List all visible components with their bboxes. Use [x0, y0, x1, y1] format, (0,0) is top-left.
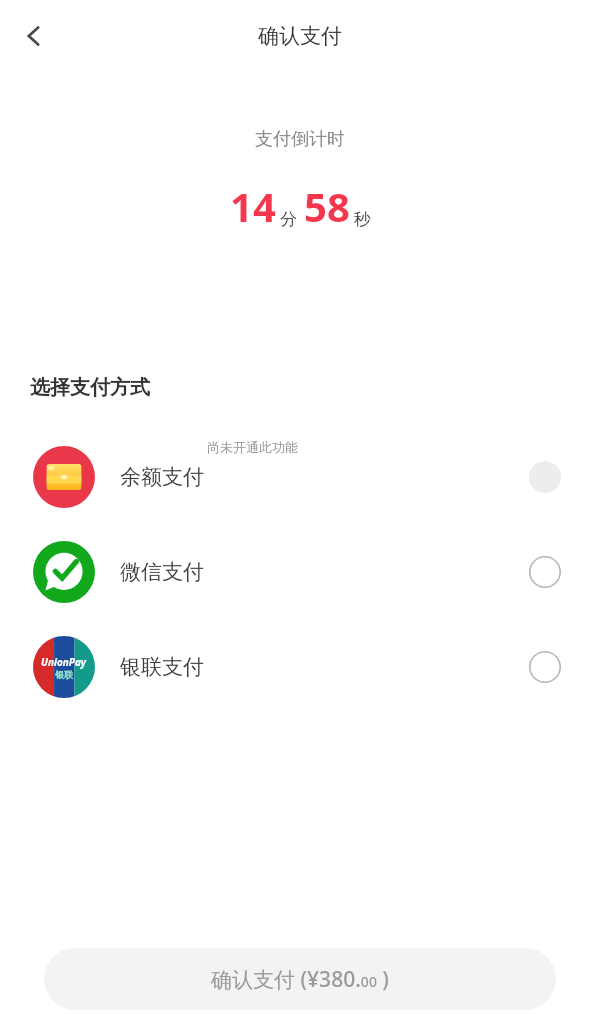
staticText: 58 [304, 179, 350, 233]
staticText: 微信支付 [120, 559, 204, 585]
staticText: 银联 [55, 669, 73, 680]
staticText: 秒 [354, 209, 371, 230]
staticText: 确认支付 [258, 23, 342, 49]
button[interactable]: 余额支付 [0, 443, 600, 511]
staticText: 14 [230, 179, 276, 233]
button[interactable]: UnionPay [0, 633, 600, 701]
staticText: 支付倒计时 [255, 128, 345, 151]
staticText: 余额支付 [120, 464, 204, 490]
button[interactable]: 微信支付 [0, 538, 600, 606]
button[interactable]: Back [6, 8, 62, 64]
staticText: 尚未开通此功能 [207, 439, 298, 455]
staticText: 确认支付 (¥380.00 ) [211, 965, 389, 994]
button[interactable]: 确认支付 (¥380.00 ) [44, 948, 556, 1010]
staticText: 银联支付 [120, 654, 204, 680]
staticText: 分 [280, 209, 297, 230]
staticText: 选择支付方式 [30, 375, 150, 400]
staticText: UnionPay [41, 655, 87, 669]
